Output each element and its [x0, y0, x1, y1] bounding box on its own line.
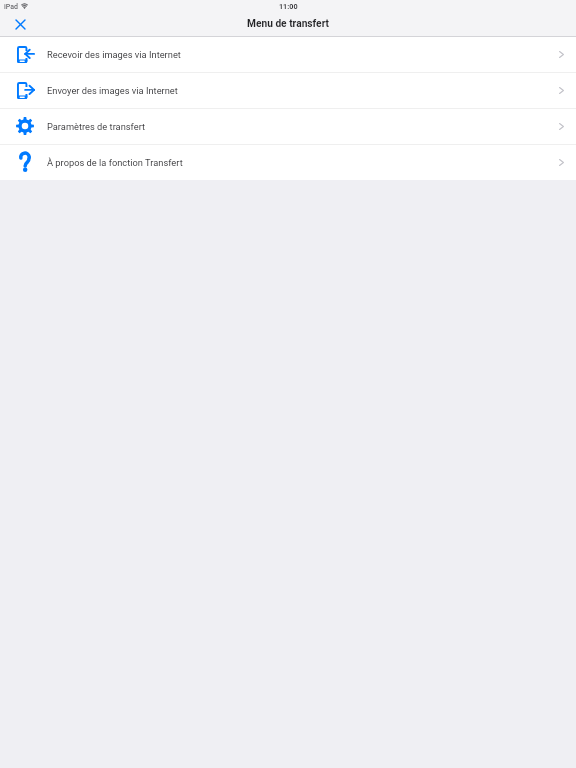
staticText: 11:00	[279, 2, 298, 10]
button[interactable]: Recevoir des images via Internet	[0, 37, 576, 72]
button[interactable]: Envoyer des images via Internet	[0, 73, 576, 108]
button[interactable]: Fermer	[10, 14, 31, 35]
staticText: Paramètres de transfert	[47, 121, 146, 132]
staticText: Recevoir des images via Internet	[47, 49, 181, 60]
staticText: Menu de transfert	[247, 18, 330, 30]
staticText: iPad	[4, 3, 18, 11]
button[interactable]: Paramètres de transfert	[0, 109, 576, 144]
staticText: À propos de la fonction Transfert	[47, 157, 183, 168]
staticText: Envoyer des images via Internet	[47, 85, 178, 96]
button[interactable]: À propos de la fonction Transfert	[0, 145, 576, 180]
